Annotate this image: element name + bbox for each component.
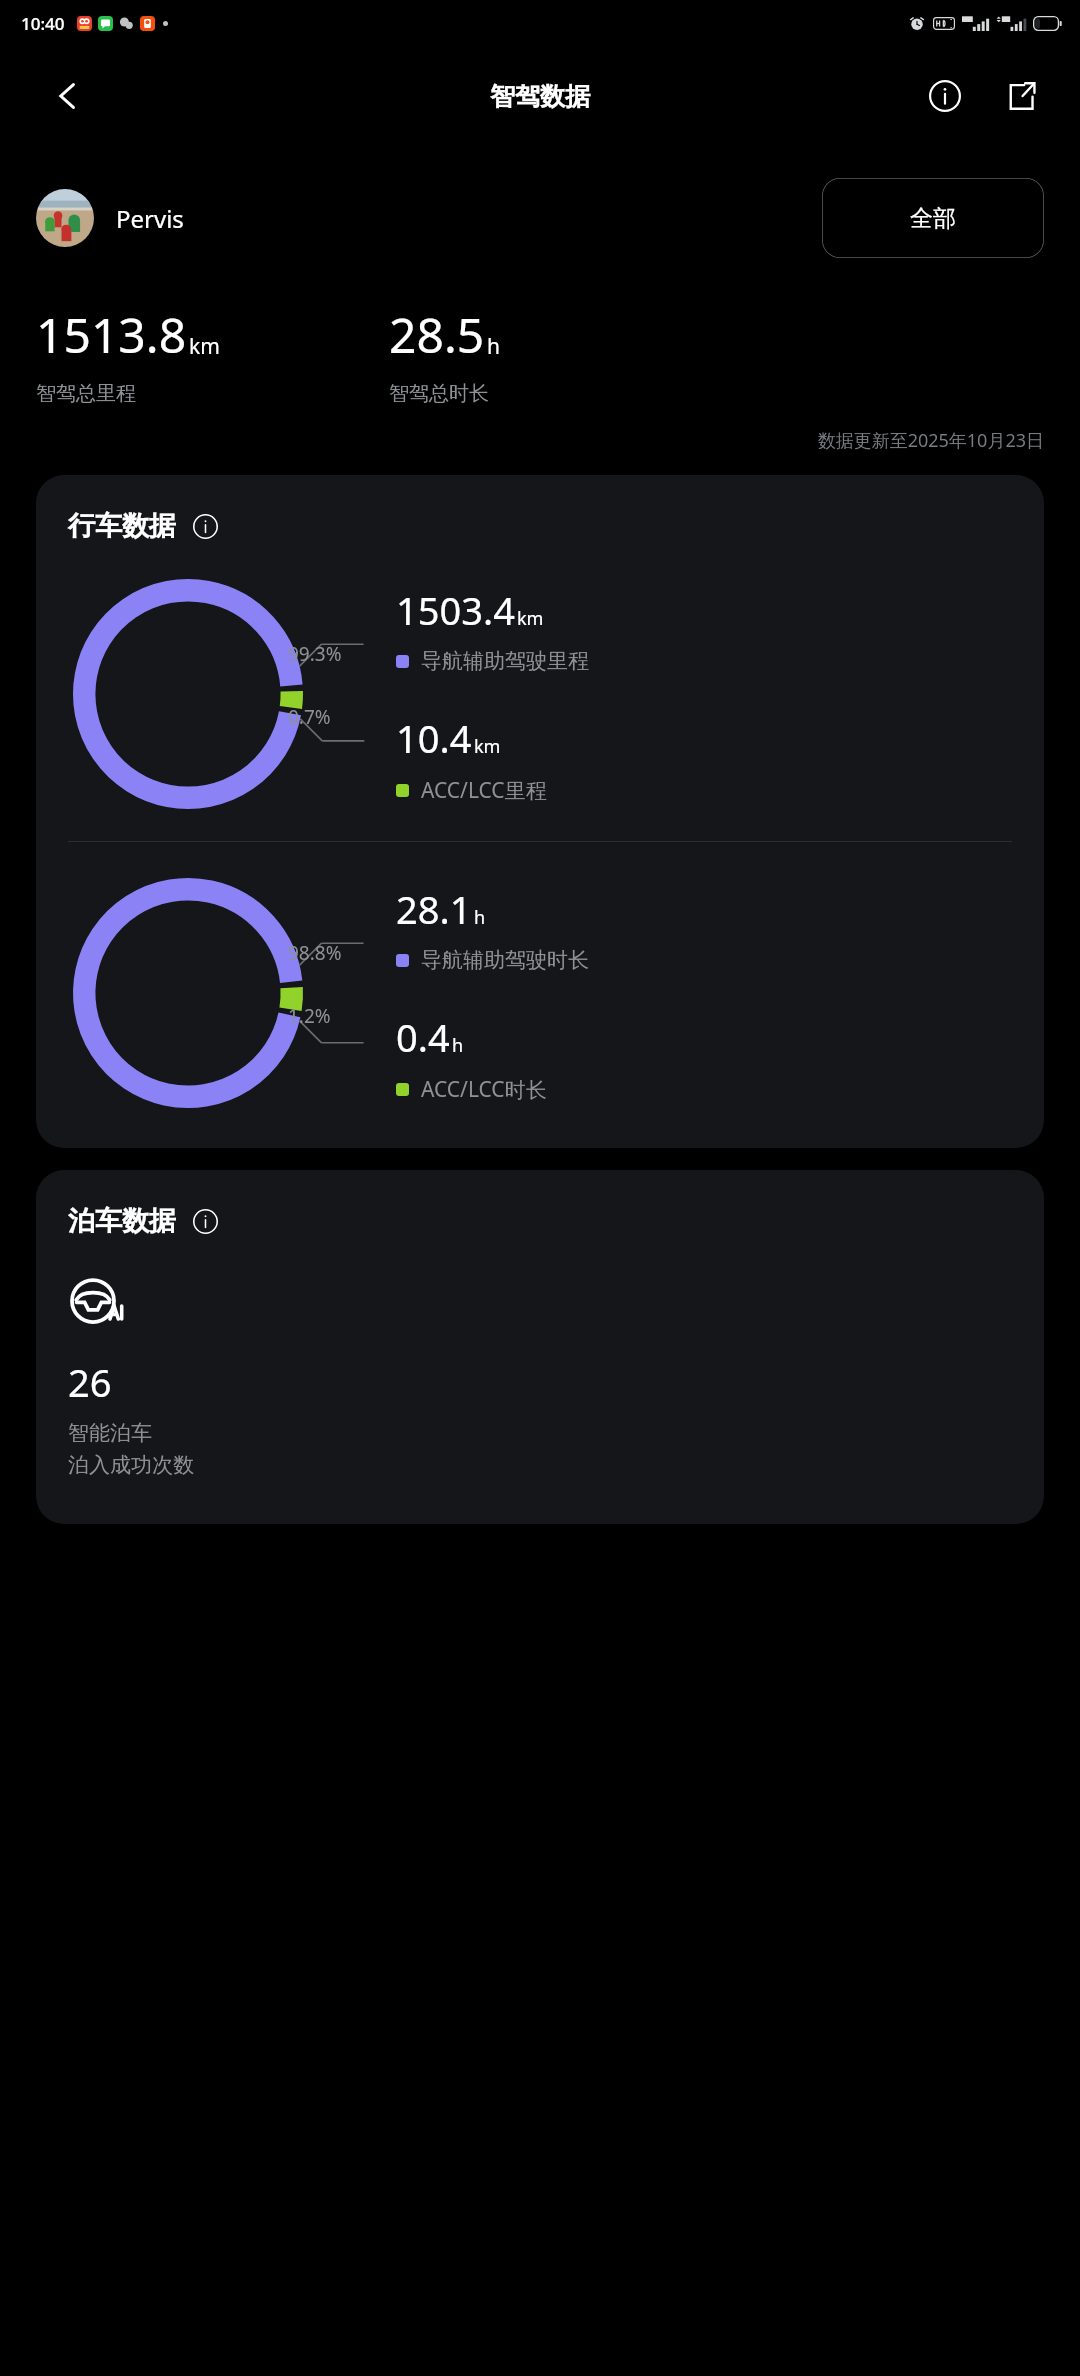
button[interactable]: Back — [40, 68, 96, 124]
staticText: km — [189, 332, 220, 361]
staticText: 导航辅助驾驶时长 — [421, 947, 589, 973]
staticText: 1503.4 — [396, 584, 515, 636]
staticText: 导航辅助驾驶里程 — [421, 648, 589, 674]
staticText: 智驾总里程 — [36, 381, 136, 406]
staticText: 10.4 — [396, 712, 472, 764]
staticText: Pervis — [116, 202, 184, 235]
staticText: 99.3% — [288, 641, 342, 667]
staticText: km — [517, 606, 544, 631]
staticText: 28.5 — [389, 302, 485, 367]
staticText: ACC/LCC里程 — [421, 776, 547, 805]
staticText: h — [452, 1033, 464, 1058]
button[interactable]: 行车数据 — [36, 475, 1044, 1148]
button[interactable]: Pervis — [36, 185, 184, 251]
staticText: h — [474, 905, 486, 930]
staticText: 行车数据 — [68, 509, 176, 543]
staticText: km — [474, 734, 501, 759]
button[interactable]: 全部 — [822, 178, 1044, 258]
staticText: 98.8% — [288, 940, 342, 966]
button[interactable]: 泊车数据 — [36, 1170, 1044, 1524]
staticText: 0.7% — [288, 704, 331, 730]
staticText: 10:40 — [21, 12, 65, 35]
button[interactable]: Share — [994, 69, 1048, 123]
button[interactable]: Info — [918, 69, 972, 123]
staticText: 智能泊车 — [68, 1420, 152, 1446]
button[interactable]: Info about 行车数据 — [188, 509, 222, 543]
button[interactable]: Info about 泊车数据 — [188, 1204, 222, 1238]
staticText: 26 — [68, 1356, 112, 1408]
staticText: 1.2% — [288, 1003, 331, 1029]
staticText: h — [487, 332, 500, 361]
staticText: 0.4 — [396, 1011, 450, 1063]
staticText: 泊入成功次数 — [68, 1452, 194, 1478]
staticText: 28.1 — [396, 883, 472, 935]
staticText: 泊车数据 — [68, 1204, 176, 1238]
staticText: 1513.8 — [36, 302, 187, 367]
staticText: 数据更新至2025年10月23日 — [817, 428, 1044, 453]
staticText: ACC/LCC时长 — [421, 1075, 547, 1104]
staticText: 全部 — [910, 204, 956, 233]
staticText: 智驾数据 — [490, 81, 590, 112]
staticText: 智驾总时长 — [389, 381, 489, 406]
